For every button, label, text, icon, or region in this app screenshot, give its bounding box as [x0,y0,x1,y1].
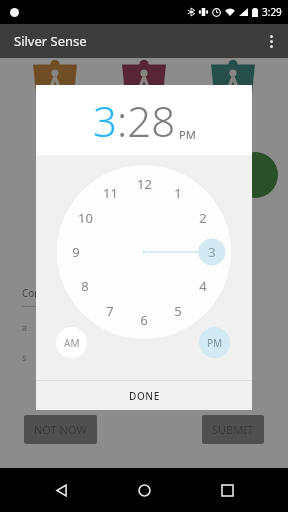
button[interactable]: 12 [133,173,155,195]
staticText: 4 [199,277,207,295]
button[interactable]: 7 [99,300,121,322]
button[interactable]: 5 [167,300,189,322]
button[interactable]: Person [208,58,258,94]
button[interactable]: 6 [133,309,155,331]
button[interactable]: AM [56,327,87,358]
button[interactable]: 4 [192,275,214,297]
button[interactable]: NOT NOW [24,415,97,444]
staticText: DONE [129,389,160,403]
staticText: AM [64,336,80,350]
button[interactable]: 3 [201,241,223,263]
staticText: 3:29 [262,5,282,19]
button[interactable]: 9 [65,241,87,263]
staticText: 2 [199,209,207,227]
button[interactable]: PM [199,327,230,358]
button[interactable]: 10 [74,207,96,229]
staticText: NOT NOW [34,422,87,437]
button[interactable]: Person [30,58,80,94]
staticText: Silver Sense [14,32,87,50]
staticText: 10 [78,209,93,227]
button[interactable]: 8 [74,275,96,297]
staticText: 7 [106,302,114,320]
staticText: 5 [174,302,182,320]
staticText: 12 [137,175,152,193]
button[interactable]: 3 [93,92,117,149]
staticText: 1 [174,184,182,202]
button[interactable]: SUBMIT [202,415,264,444]
button[interactable]: Home [122,468,166,512]
button[interactable]: DONE [36,381,252,410]
staticText: PM [179,127,196,142]
button[interactable]: More options [254,24,288,58]
button[interactable]: :28 [117,92,176,149]
button[interactable]: 11 [99,182,121,204]
button[interactable]: Person [119,58,169,94]
staticText: a [22,321,28,333]
button[interactable]: Back [39,468,83,512]
button[interactable]: 1 [167,182,189,204]
staticText: 11 [103,184,118,202]
staticText: 9 [72,243,80,261]
staticText: 3 [208,243,216,261]
button[interactable]: 2 [192,207,214,229]
staticText: 8 [81,277,89,295]
staticText: PM [207,336,223,350]
button[interactable]: Add [232,152,278,198]
staticText: 6 [140,311,148,329]
button[interactable]: Recent apps [205,468,249,512]
staticText: SUBMIT [212,422,254,437]
staticText: Comments [22,286,74,300]
staticText: s [22,351,27,363]
